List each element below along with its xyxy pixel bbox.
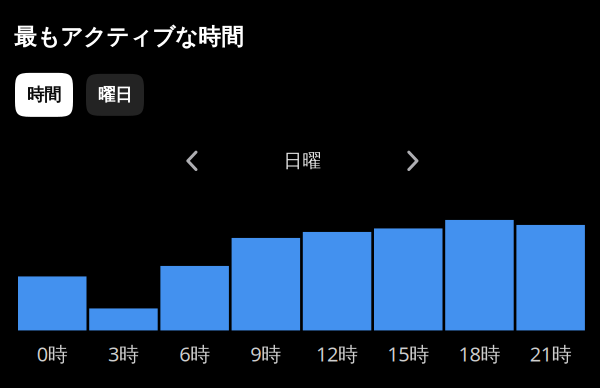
button[interactable]: 前の曜日 [170, 143, 214, 179]
staticText: 0時 [37, 340, 68, 367]
staticText: 21時 [530, 340, 572, 367]
staticText: 時間 [27, 84, 61, 105]
button[interactable]: 曜日 [86, 74, 144, 116]
button[interactable]: 次の曜日 [391, 143, 435, 179]
staticText: 最もアクティブな時間 [14, 23, 244, 51]
staticText: 18時 [458, 340, 500, 367]
staticText: 3時 [108, 340, 139, 367]
staticText: 6時 [179, 340, 210, 367]
staticText: 曜日 [98, 84, 132, 105]
button[interactable]: 時間 [15, 73, 73, 117]
staticText: 15時 [387, 340, 429, 367]
staticText: 12時 [316, 340, 358, 367]
staticText: 9時 [250, 340, 281, 367]
staticText: 日曜 [283, 149, 321, 172]
